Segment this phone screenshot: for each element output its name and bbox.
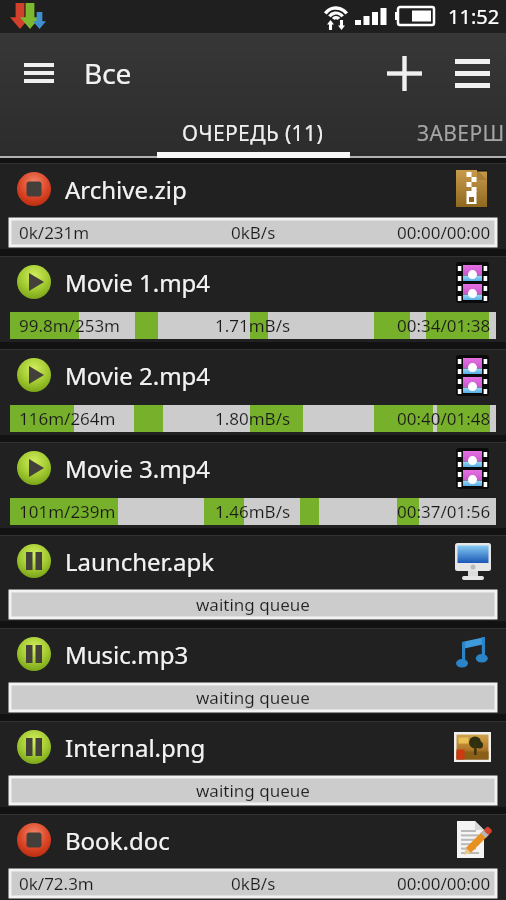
button[interactable] — [17, 823, 51, 857]
staticText: 101m/239m — [19, 500, 116, 523]
staticText: Movie 1.mp4 — [65, 266, 211, 299]
button[interactable]: Internal.png — [0, 721, 506, 807]
staticText: 0k/231m — [19, 221, 90, 244]
staticText: waiting queue — [196, 779, 310, 802]
button[interactable] — [378, 47, 430, 99]
button[interactable]: Book.doc — [0, 814, 506, 900]
button[interactable] — [17, 451, 51, 485]
staticText: 116m/264m — [19, 407, 116, 430]
staticText: 00:40/01:48 — [397, 407, 491, 430]
button[interactable] — [127, 112, 380, 158]
staticText: Movie 3.mp4 — [65, 452, 211, 485]
staticText: 1.46mB/s — [215, 500, 291, 523]
button[interactable] — [17, 544, 51, 578]
staticText: Launcher.apk — [65, 545, 215, 578]
button[interactable] — [446, 47, 498, 99]
staticText: Book.doc — [65, 824, 170, 857]
staticText: 1.80mB/s — [215, 407, 291, 430]
button[interactable] — [17, 637, 51, 671]
staticText: waiting queue — [196, 593, 310, 616]
staticText: ЗАВЕРШЕН — [417, 119, 506, 148]
staticText: Music.mp3 — [65, 638, 189, 671]
button[interactable]: Launcher.apk — [0, 535, 506, 621]
staticText: 00:00/00:00 — [397, 872, 491, 895]
staticText: 00:00/00:00 — [397, 221, 491, 244]
staticText: 0kB/s — [231, 221, 276, 244]
button[interactable] — [17, 358, 51, 392]
staticText: waiting queue — [196, 686, 310, 709]
button[interactable]: Movie 1.mp4 — [0, 256, 506, 342]
staticText: 11:52 — [448, 3, 500, 30]
button[interactable]: Archive.zip — [0, 163, 506, 249]
button[interactable] — [16, 50, 62, 96]
button[interactable]: Movie 3.mp4 — [0, 442, 506, 528]
staticText: 00:37/01:56 — [397, 500, 491, 523]
button[interactable] — [17, 730, 51, 764]
button[interactable]: Movie 2.mp4 — [0, 349, 506, 435]
staticText: ОЧЕРЕДЬ (11) — [182, 119, 324, 148]
staticText: 99.8m/253m — [19, 314, 121, 337]
staticText: Все — [84, 54, 132, 92]
staticText: 0kB/s — [231, 872, 276, 895]
staticText: Internal.png — [65, 731, 206, 764]
staticText: Archive.zip — [65, 173, 187, 206]
staticText: 00:34/01:38 — [397, 314, 491, 337]
button[interactable] — [17, 172, 51, 206]
staticText: 1.71mB/s — [215, 314, 291, 337]
staticText: 0k/72.3m — [19, 872, 94, 895]
button[interactable]: Music.mp3 — [0, 628, 506, 714]
button[interactable] — [17, 265, 51, 299]
staticText: Movie 2.mp4 — [65, 359, 211, 392]
